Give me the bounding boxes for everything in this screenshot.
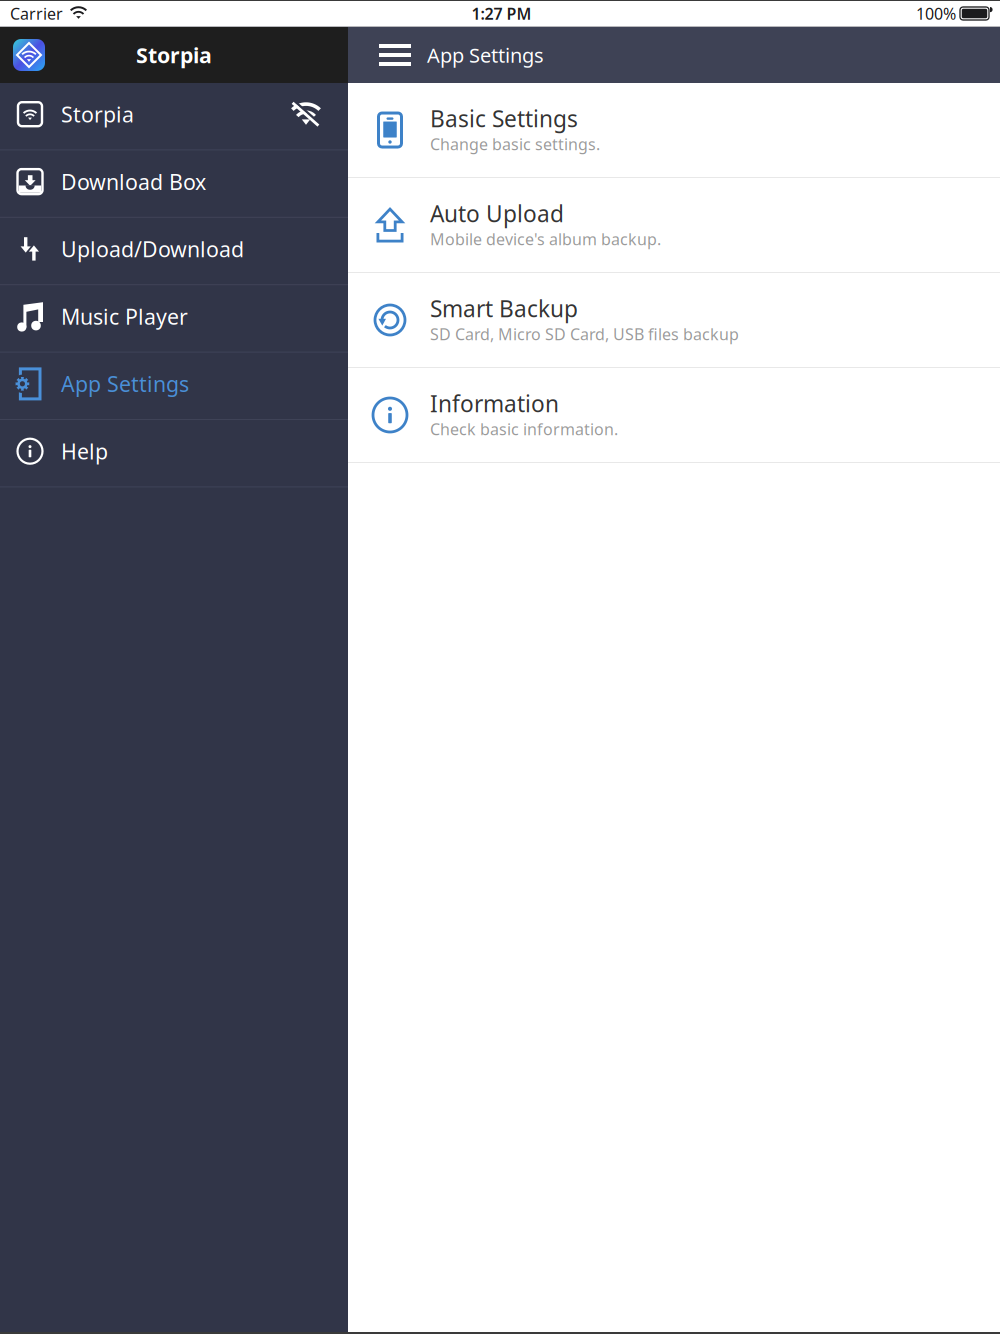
staticText: Mobile device's album backup. — [430, 228, 661, 250]
staticText: Storpia — [61, 100, 134, 128]
button[interactable]: Basic Settings — [348, 83, 1000, 178]
staticText: Change basic settings. — [430, 133, 600, 155]
staticText: Smart Backup — [430, 293, 578, 323]
staticText: App Settings — [427, 42, 544, 68]
staticText: Auto Upload — [430, 198, 564, 228]
staticText: SD Card, Micro SD Card, USB files backup — [430, 323, 739, 345]
staticText: Carrier — [10, 3, 63, 24]
staticText: 100% — [916, 3, 956, 24]
staticText: Storpia — [136, 41, 212, 69]
button[interactable]: Upload/Download — [0, 218, 348, 285]
button[interactable]: Help — [0, 420, 348, 487]
staticText: Basic Settings — [430, 103, 578, 133]
button[interactable]: Download Box — [0, 150, 348, 218]
button[interactable]: Auto Upload — [348, 178, 1000, 273]
staticText: Upload/Download — [61, 235, 244, 263]
button[interactable]: Storpia — [13, 39, 45, 71]
button[interactable]: Storpia — [0, 83, 348, 150]
staticText: Help — [61, 437, 108, 465]
staticText: 1:27 PM — [471, 3, 531, 24]
staticText: App Settings — [61, 370, 189, 398]
button[interactable]: Music Player — [0, 285, 348, 353]
staticText: Information — [430, 388, 559, 418]
staticText: Check basic information. — [430, 418, 618, 440]
button[interactable]: Menu — [373, 33, 417, 77]
staticText: Music Player — [61, 302, 188, 330]
staticText: Download Box — [61, 167, 206, 196]
button[interactable]: App Settings — [0, 353, 348, 420]
button[interactable]: Smart Backup — [348, 273, 1000, 368]
button[interactable]: Information — [348, 368, 1000, 463]
